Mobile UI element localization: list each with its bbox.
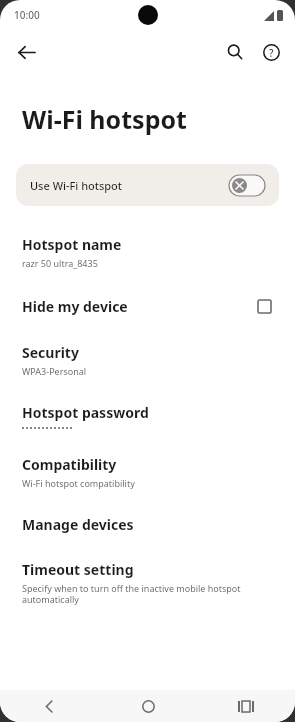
staticText: Wi-Fi hotspot compatibility: [22, 477, 135, 489]
button[interactable]: Home: [99, 690, 197, 722]
button[interactable]: Compatibility: [0, 446, 295, 498]
button[interactable]: Manage devices: [0, 506, 295, 543]
button[interactable]: Help: [253, 34, 289, 70]
staticText: WPA3-Personal: [22, 365, 87, 377]
staticText: razr 50 ultra_8435: [22, 257, 98, 269]
staticText: Specify when to turn off the inactive mo…: [22, 582, 275, 606]
staticText: Wi-Fi hotspot: [22, 102, 187, 136]
staticText: Manage devices: [22, 515, 134, 534]
button[interactable]: Use Wi-Fi hotspot: [16, 164, 279, 206]
staticText: Hide my device: [22, 297, 128, 316]
button[interactable]: Security: [0, 334, 295, 386]
staticText: Compatibility: [22, 455, 117, 474]
button[interactable]: Hide my device checkbox: [253, 295, 275, 317]
button[interactable]: Search: [217, 34, 253, 70]
staticText: Security: [22, 343, 79, 362]
button[interactable]: Hotspot password: [0, 394, 295, 438]
button[interactable]: Recent apps: [197, 690, 295, 722]
staticText: Hotspot password: [22, 403, 149, 422]
button[interactable]: Hotspot name: [0, 226, 295, 278]
button[interactable]: Timeout setting: [0, 551, 295, 615]
staticText: 10:00: [14, 8, 40, 22]
staticText: Timeout setting: [22, 560, 134, 579]
staticText: Hotspot name: [22, 235, 122, 254]
button[interactable]: Back: [0, 690, 99, 722]
button[interactable]: Back: [8, 34, 44, 70]
button[interactable]: Hide my device: [0, 286, 295, 326]
staticText: ?: [269, 46, 274, 60]
staticText: Use Wi-Fi hotspot: [30, 178, 229, 193]
